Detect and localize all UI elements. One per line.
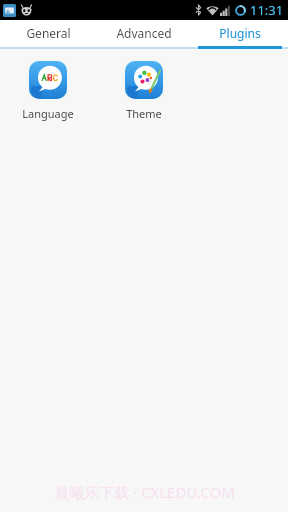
other: Language — [29, 61, 67, 99]
button[interactable]: Theme — [96, 59, 192, 123]
staticText: Plugins — [219, 25, 261, 41]
button[interactable]: Plugins — [192, 20, 288, 46]
staticText: 晨曦乐下载 · CXLEDU.COM — [54, 482, 235, 502]
button[interactable]: Language — [0, 59, 96, 123]
staticText: Advanced — [116, 25, 172, 41]
staticText: Theme — [126, 106, 162, 121]
button[interactable]: Advanced — [96, 20, 192, 46]
staticText: 11:31 — [250, 1, 284, 19]
button[interactable]: General — [0, 20, 96, 46]
staticText: Language — [22, 106, 74, 121]
staticText: General — [26, 25, 71, 41]
other: Theme — [125, 61, 163, 99]
